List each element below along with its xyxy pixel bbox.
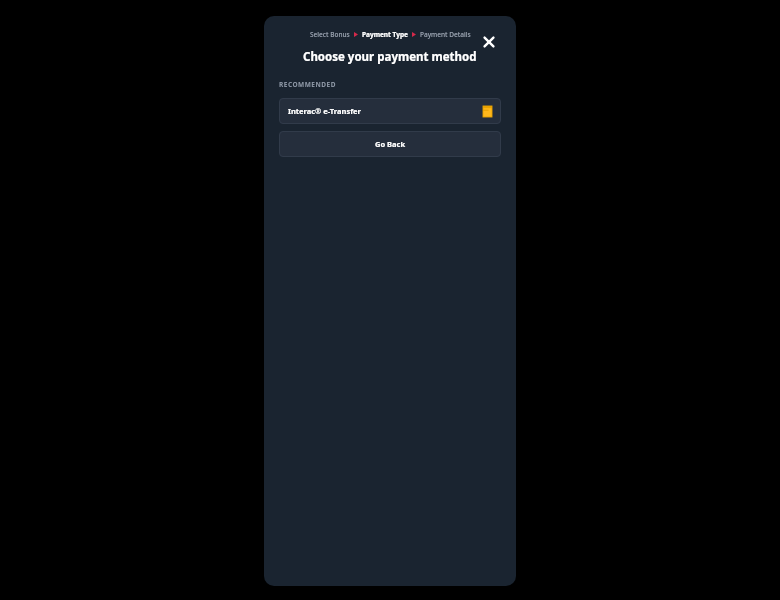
staticText: Payment Details [420,30,471,39]
staticText: Go Back [375,139,406,149]
staticText: RECOMMENDED [279,80,336,89]
staticText: Payment Type [362,30,408,39]
button[interactable]: Select Bonus [310,30,350,39]
button[interactable]: Payment Details [420,30,471,39]
button[interactable]: Go Back [279,131,501,157]
staticText: Select Bonus [310,30,350,39]
button[interactable]: Payment Type [362,30,408,39]
button[interactable]: Interac® e-Transfer [279,98,501,124]
staticText: Choose your payment method [303,49,477,65]
button[interactable]: Close [475,28,503,56]
staticText: Interac® e-Transfer [288,106,361,116]
